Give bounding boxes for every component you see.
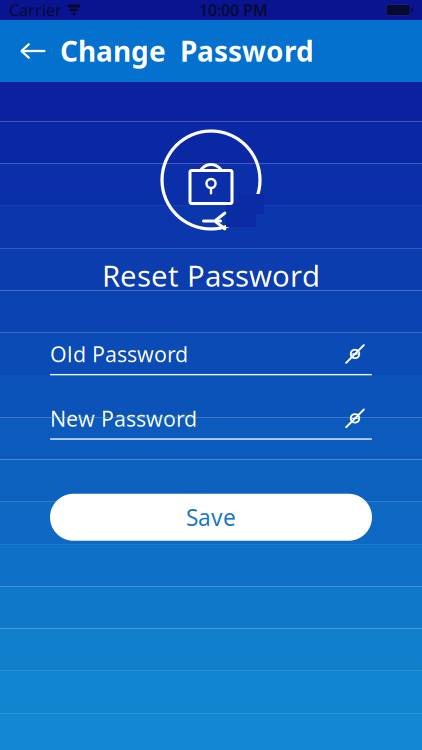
staticText: Save (186, 502, 236, 532)
button[interactable]: Show Old Password (338, 341, 372, 367)
staticText: Reset Password (102, 256, 320, 295)
staticText: New Password (50, 404, 197, 432)
staticText: Old Password (50, 340, 188, 368)
button[interactable]: Save (0, 494, 422, 541)
button[interactable]: Back (6, 20, 60, 82)
staticText: Carrier (9, 0, 62, 21)
staticText: Change Password (60, 32, 314, 70)
button[interactable]: Show New Password (338, 405, 372, 431)
staticText: 10:00 PM (199, 0, 268, 21)
